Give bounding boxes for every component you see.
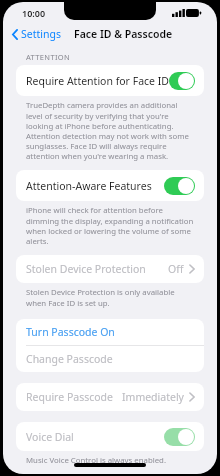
staticText: Require Passcode: [26, 390, 113, 404]
button[interactable]: Turn Passcode On: [16, 319, 204, 345]
button[interactable]: Attention-Aware Features: [16, 170, 204, 201]
staticText: Music Voice Control is always enabled.: [26, 455, 166, 466]
staticText: Voice Dial: [26, 430, 74, 444]
staticText: Stolen Device Protection is only availab…: [26, 287, 195, 308]
button[interactable]: Voice Dial: [16, 422, 204, 451]
button[interactable]: Toggle on: [164, 177, 195, 195]
staticText: Settings: [21, 27, 61, 41]
staticText: Turn Passcode On: [26, 325, 115, 339]
button[interactable]: Toggle on: [169, 72, 195, 90]
staticText: ATTENTION: [26, 52, 71, 62]
staticText: TrueDepth camera provides an additional …: [26, 100, 195, 161]
staticText: Require Attention for Face ID: [26, 74, 169, 88]
staticText: Immediately: [122, 390, 184, 404]
button[interactable]: Back to Settings: [3, 27, 65, 41]
button[interactable]: Stolen Device Protection: [16, 255, 204, 283]
staticText: Face ID & Passcode: [74, 27, 173, 41]
button[interactable]: Require Attention for Face ID: [16, 65, 204, 96]
staticText: iPhone will check for attention before d…: [26, 205, 195, 246]
staticText: Off: [168, 262, 184, 276]
staticText: Attention-Aware Features: [26, 179, 152, 193]
button[interactable]: Require Passcode: [16, 383, 204, 411]
staticText: Change Passcode: [26, 352, 113, 366]
staticText: 10:00: [22, 7, 46, 19]
button[interactable]: Change Passcode: [16, 346, 204, 372]
staticText: Stolen Device Protection: [26, 262, 146, 276]
button[interactable]: Toggle on: [164, 428, 195, 446]
